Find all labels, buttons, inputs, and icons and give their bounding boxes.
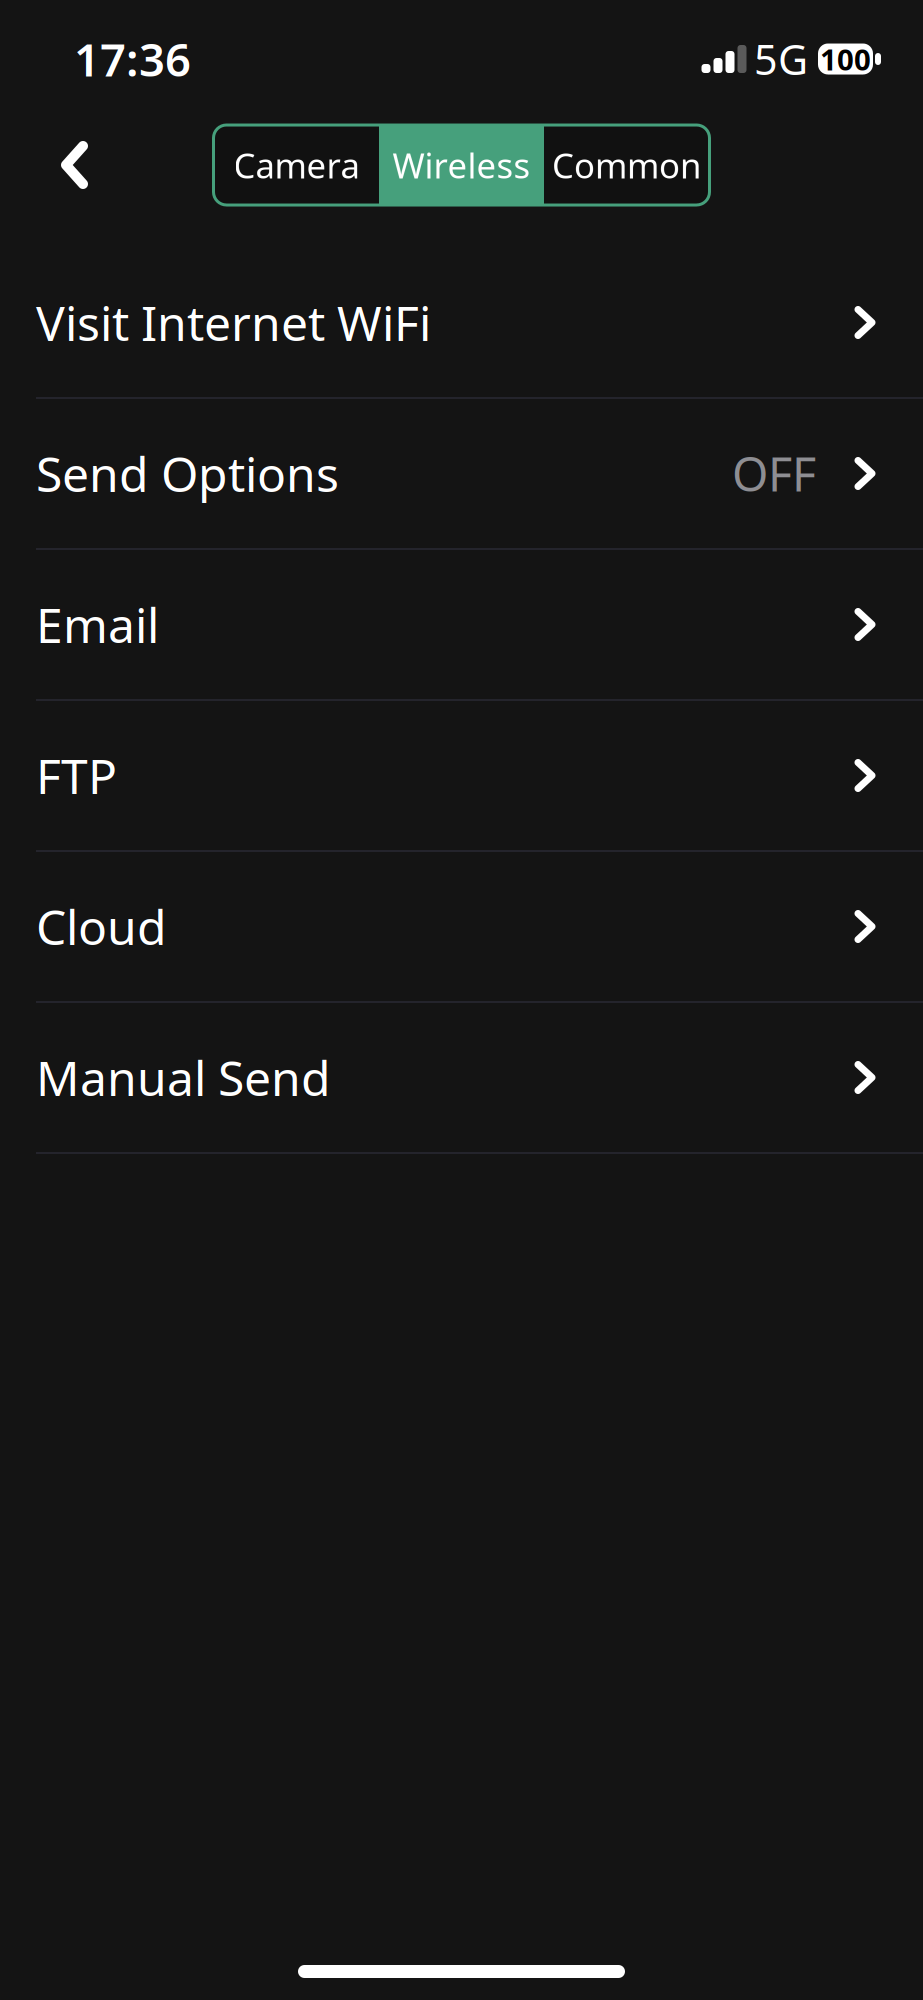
button[interactable]: Camera bbox=[214, 125, 379, 205]
staticText: Common bbox=[552, 142, 701, 188]
button[interactable]: Email bbox=[0, 550, 923, 701]
staticText: OFF bbox=[732, 442, 816, 504]
staticText: Wireless bbox=[392, 142, 530, 188]
button[interactable]: Manual Send bbox=[0, 1003, 923, 1154]
staticText: Manual Send bbox=[36, 1046, 331, 1109]
button[interactable]: Common bbox=[544, 125, 709, 205]
button[interactable]: Visit Internet WiFi bbox=[0, 248, 923, 399]
button[interactable]: Wireless bbox=[379, 125, 544, 205]
button[interactable]: Send Options bbox=[0, 399, 923, 550]
staticText: Cloud bbox=[36, 895, 167, 958]
staticText: Camera bbox=[233, 142, 359, 188]
staticText: FTP bbox=[36, 744, 117, 807]
staticText: 17:36 bbox=[74, 29, 191, 89]
staticText: 100 bbox=[820, 39, 871, 78]
staticText: 5G bbox=[754, 32, 808, 86]
button[interactable]: FTP bbox=[0, 701, 923, 852]
button[interactable]: Back bbox=[0, 124, 125, 206]
staticText: Visit Internet WiFi bbox=[36, 291, 431, 354]
staticText: Email bbox=[36, 593, 159, 656]
button[interactable]: Cloud bbox=[0, 852, 923, 1003]
staticText: Send Options bbox=[36, 442, 339, 505]
